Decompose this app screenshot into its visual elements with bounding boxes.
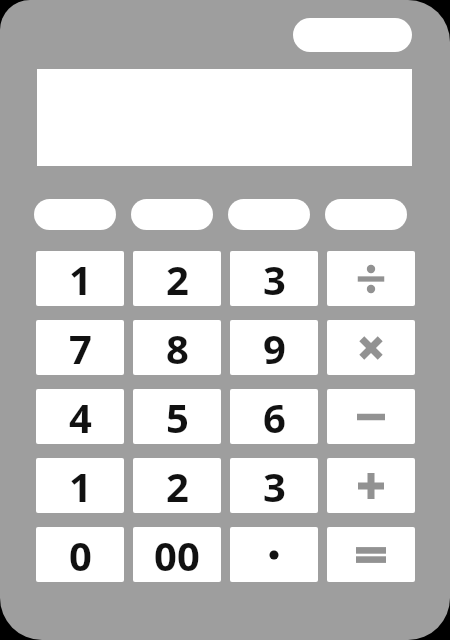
button[interactable]: 2 [133,251,221,306]
staticText: 5 [166,390,189,444]
button[interactable] [327,251,415,306]
button[interactable] [228,199,310,230]
staticText: 2 [166,252,189,306]
staticText: 7 [69,321,92,375]
button[interactable] [327,320,415,375]
staticText: 8 [166,321,189,375]
button[interactable]: 8 [133,320,221,375]
staticText: 00 [154,528,200,582]
button[interactable]: 5 [133,389,221,444]
button[interactable] [131,199,213,230]
staticText: 9 [263,321,286,375]
button[interactable]: 2 [133,458,221,513]
button[interactable] [230,527,318,582]
staticText: 1 [69,252,92,306]
button[interactable]: 3 [230,251,318,306]
staticText: 3 [263,252,286,306]
button[interactable] [327,527,415,582]
button[interactable] [325,199,407,230]
staticText: 3 [263,459,286,513]
button[interactable]: 0 [36,527,124,582]
staticText: 6 [263,390,286,444]
staticText: 0 [69,528,92,582]
staticText: 1 [69,459,92,513]
button[interactable]: 1 [36,251,124,306]
button[interactable]: 6 [230,389,318,444]
button[interactable] [327,389,415,444]
button[interactable]: 4 [36,389,124,444]
staticText: 2 [166,459,189,513]
staticText: 4 [69,390,92,444]
button[interactable]: 9 [230,320,318,375]
button[interactable] [327,458,415,513]
button[interactable]: 3 [230,458,318,513]
button[interactable] [34,199,116,230]
button[interactable]: 1 [36,458,124,513]
button[interactable]: 00 [133,527,221,582]
button[interactable]: 7 [36,320,124,375]
